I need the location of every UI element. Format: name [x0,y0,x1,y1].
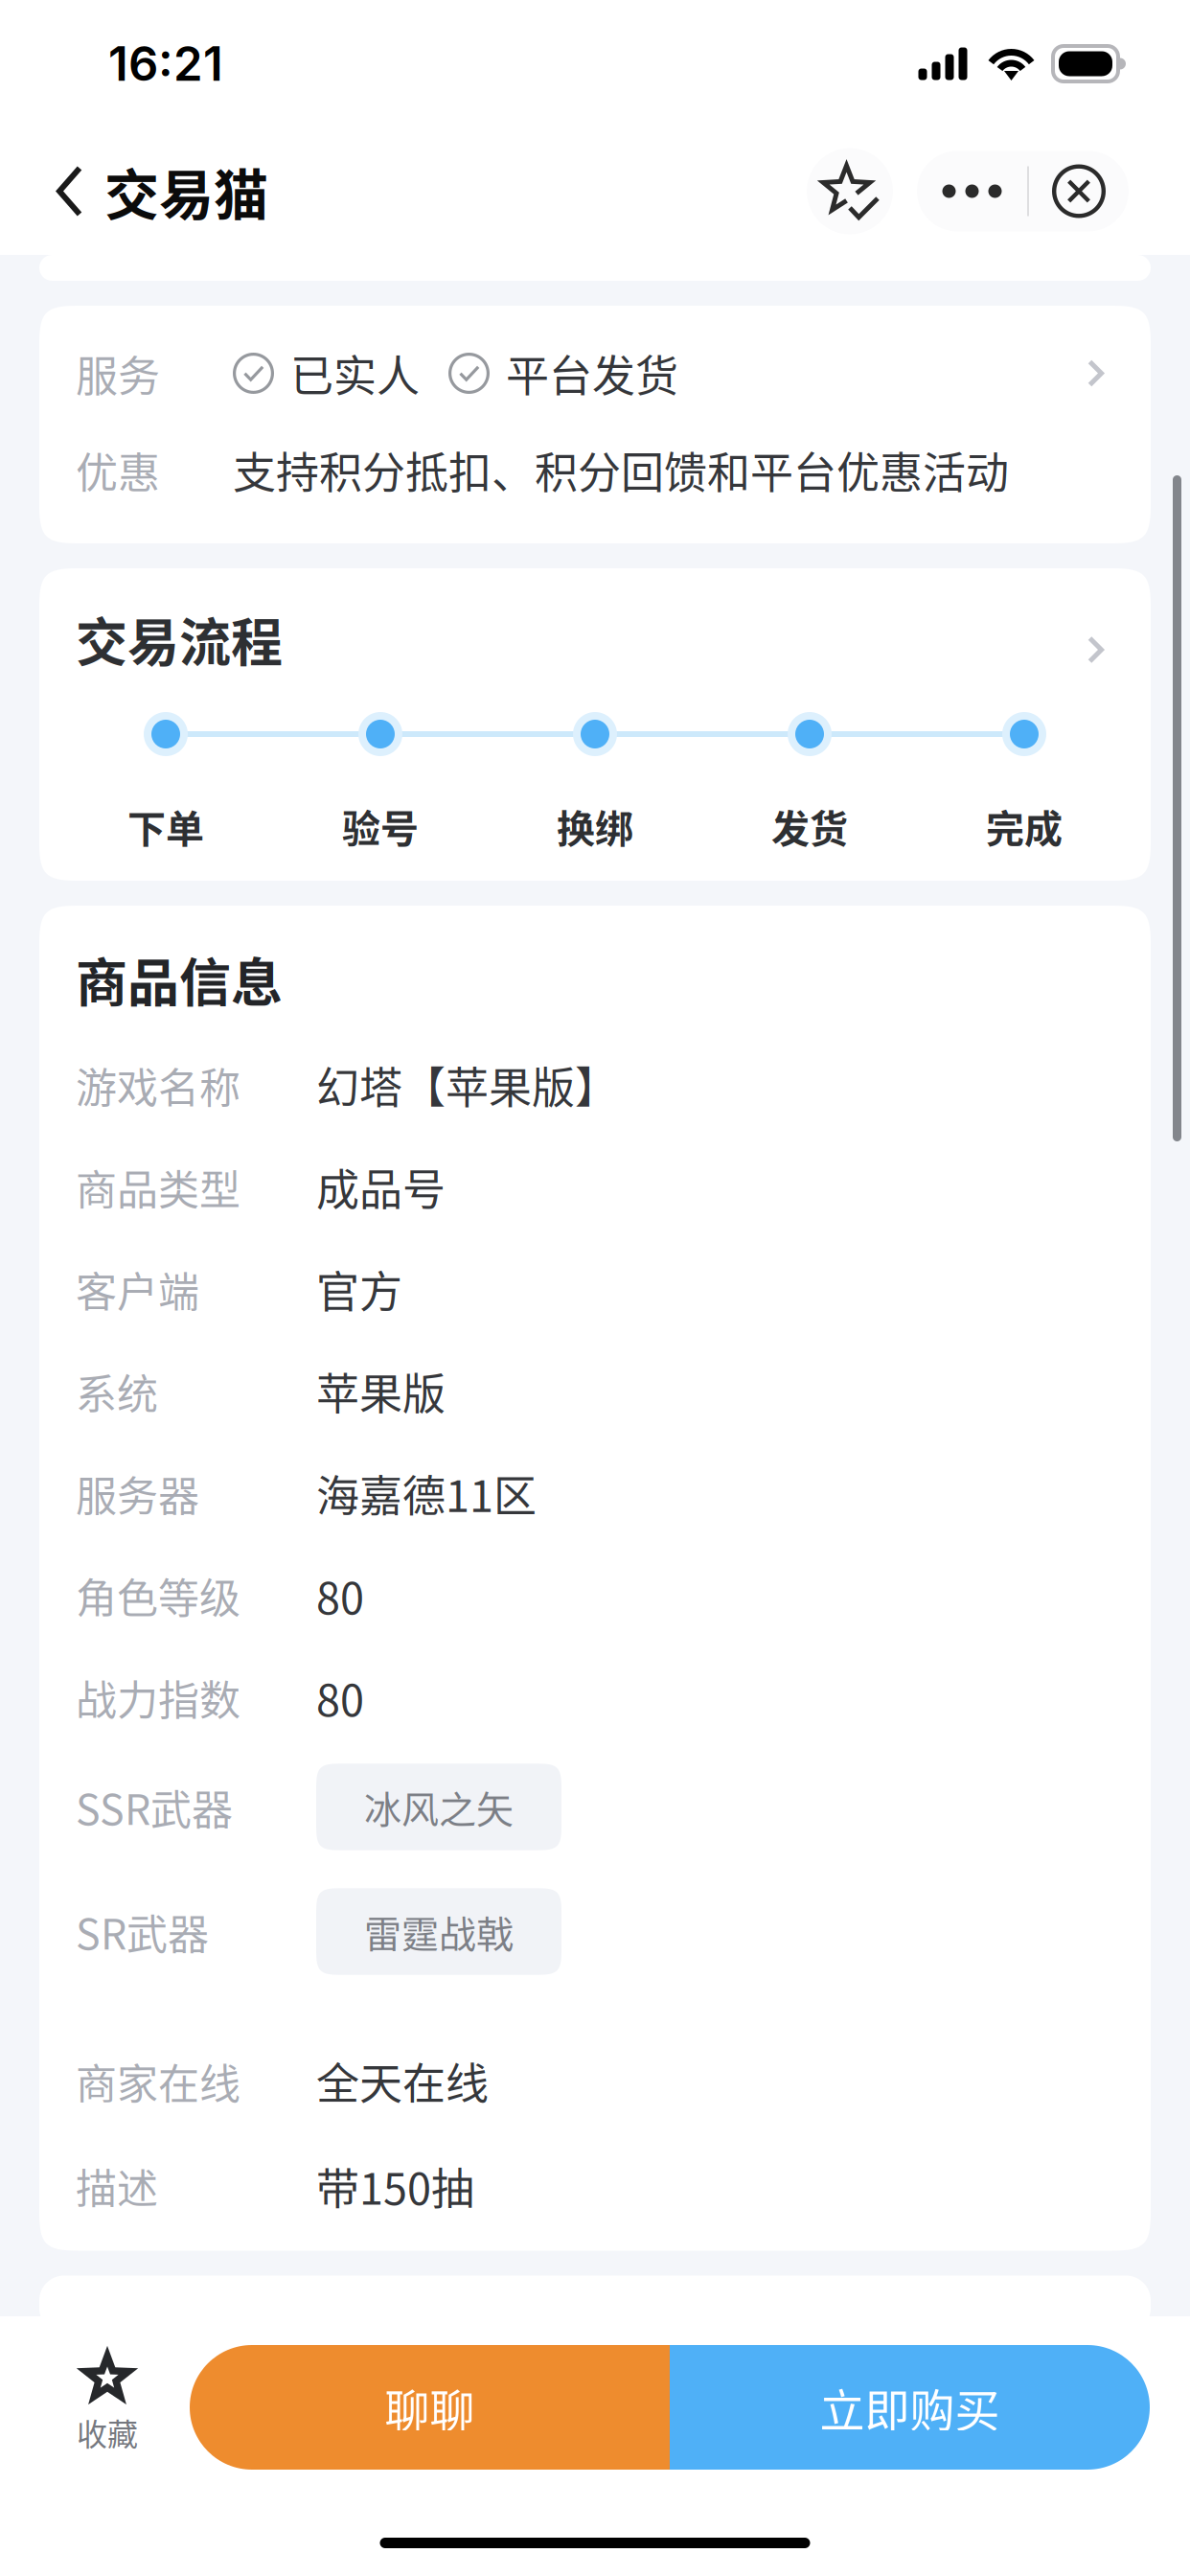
staticText: 服务 [76,343,160,404]
staticText: 幻塔【苹果版】 [316,1054,618,1116]
staticText: 商品信息 [76,942,283,1017]
staticText: 交易猫 [104,152,268,231]
staticText: 官方 [316,1258,402,1320]
staticText: 完成 [986,798,1063,854]
button[interactable]: 收藏 [33,2335,182,2479]
staticText: 角色等级 [76,1566,240,1625]
staticText: 商品类型 [76,1157,240,1217]
staticText: 冰风之矢 [364,1780,514,1834]
staticText: 立即购买 [820,2375,1000,2440]
staticText: 描述 [76,2156,158,2216]
staticText: 游戏名称 [76,1055,240,1115]
staticText: 海嘉德11区 [316,1462,537,1525]
button[interactable]: 交易猫 [56,132,268,250]
staticText: 80 [316,1666,364,1729]
staticText: 带150抽 [316,2155,474,2217]
staticText: SSR武器 [76,1777,233,1837]
button[interactable]: 收藏 [807,148,893,234]
staticText: 支持积分抵扣、积分回馈和平台优惠活动 [233,439,1009,501]
staticText: 已实人 [290,342,420,405]
button[interactable]: 聊聊 [190,2345,670,2470]
staticText: 商家在线 [76,2051,240,2111]
staticText: 换绑 [557,798,633,854]
staticText: 雷霆战戟 [364,1904,514,1959]
staticText: 发货 [771,798,848,854]
staticText: 全天在线 [316,2050,489,2112]
staticText: 交易流程 [76,602,283,677]
staticText: 下单 [127,798,204,854]
button[interactable]: 关闭 [1029,151,1129,231]
staticText: SR武器 [76,1902,209,1961]
button[interactable]: 更多 [917,151,1027,231]
staticText: 战力指数 [76,1668,240,1727]
staticText: 聊聊 [385,2375,475,2440]
button[interactable]: 立即购买 [670,2345,1150,2470]
staticText: 服务器 [76,1463,199,1523]
staticText: 成品号 [316,1156,446,1218]
staticText: 验号 [342,798,419,854]
staticText: 16:21 [108,35,223,92]
staticText: 系统 [76,1361,158,1421]
staticText: 收藏 [77,2410,138,2455]
staticText: 80 [316,1564,364,1627]
staticText: 客户端 [76,1259,199,1319]
staticText: 优惠 [76,439,160,501]
staticText: 苹果版 [316,1360,446,1423]
staticText: 平台发货 [506,342,678,405]
